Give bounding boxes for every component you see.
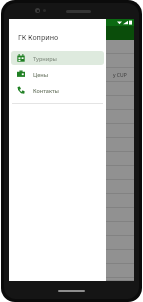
staticText: Турниры	[33, 55, 57, 62]
staticText: y CUP	[113, 72, 127, 79]
staticText: ГК Коприно	[18, 33, 59, 43]
button[interactable]: Contacts	[11, 83, 104, 97]
button[interactable]	[9, 40, 134, 281]
staticText: Цены	[33, 71, 48, 78]
button[interactable]: Prices	[11, 67, 104, 81]
button[interactable]: Tournaments	[11, 51, 104, 65]
staticText: Контакты	[33, 87, 59, 94]
